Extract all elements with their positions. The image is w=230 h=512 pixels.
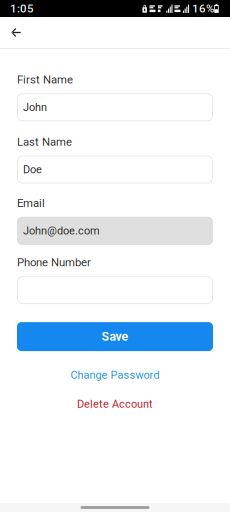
staticText: 16% [189, 2, 214, 15]
staticText: Doe [23, 163, 42, 176]
button[interactable]: Delete Account [17, 397, 213, 411]
staticText: Delete Account [77, 398, 153, 410]
staticText: Save [101, 329, 128, 344]
button[interactable]: Back [5, 20, 27, 44]
staticText: First Name [17, 73, 73, 86]
staticText: Phone Number [17, 256, 91, 269]
staticText: John [23, 101, 47, 114]
staticText: 1:05 [10, 2, 34, 15]
staticText: Last Name [17, 135, 72, 149]
staticText: Change Password [70, 369, 159, 381]
staticText: Email [17, 197, 45, 210]
button[interactable]: Save [17, 322, 213, 351]
button[interactable]: Change Password [17, 368, 213, 382]
staticText: John@doe.com [23, 224, 100, 237]
